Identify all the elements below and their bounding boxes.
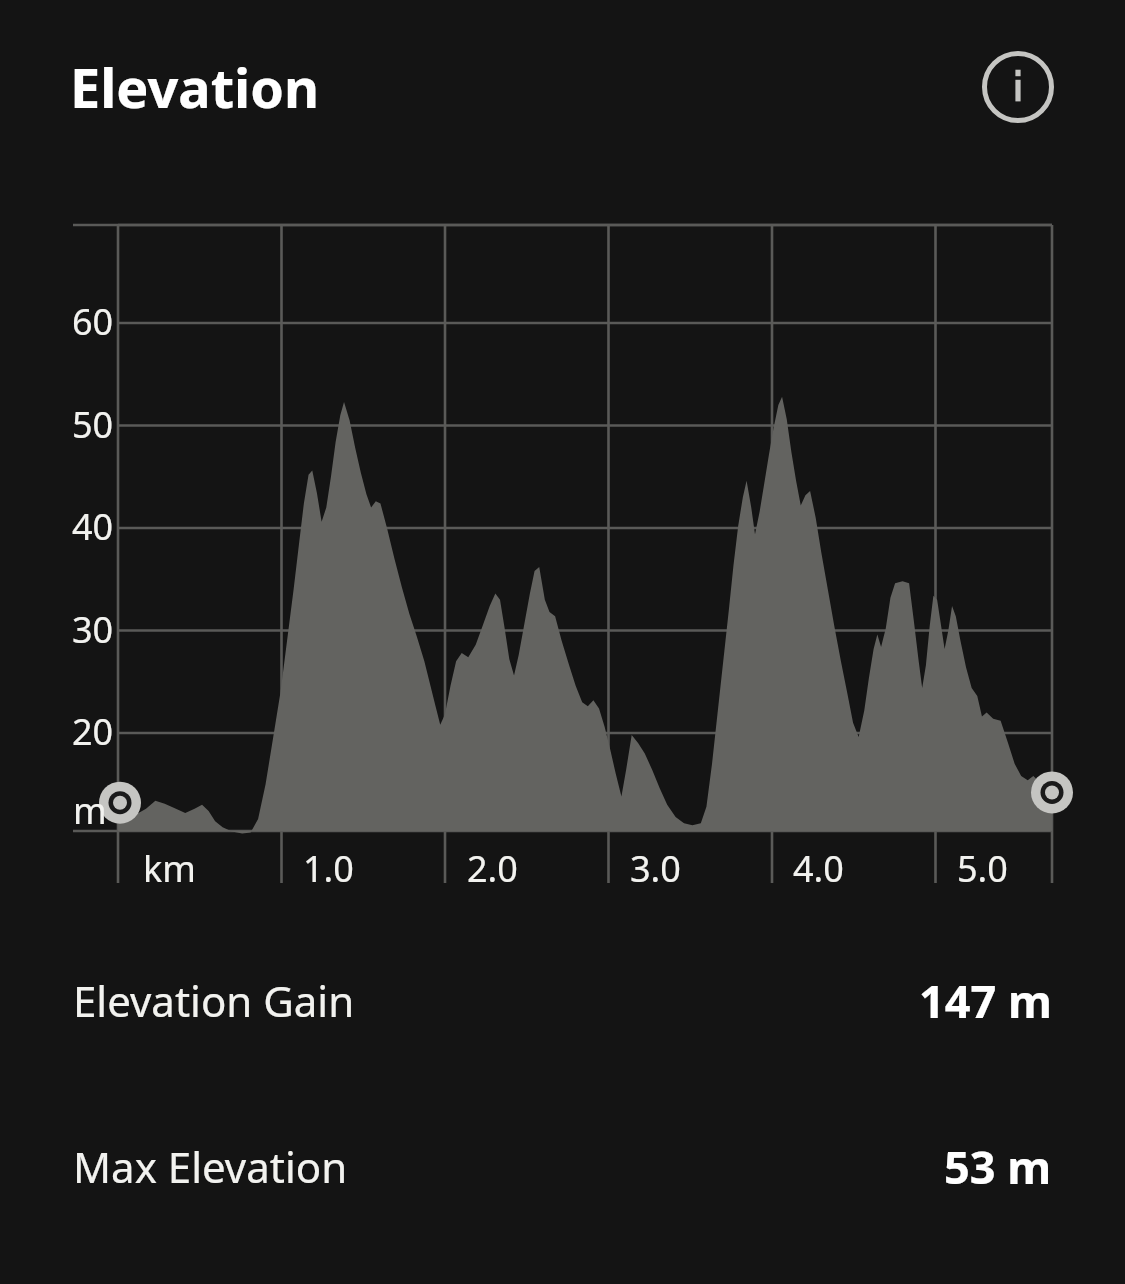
staticText: Elevation Gain — [73, 972, 355, 1029]
staticText: 30 — [72, 605, 114, 654]
staticText: 5.0 — [957, 844, 1008, 893]
staticText: Max Elevation — [73, 1138, 348, 1195]
staticText: 60 — [72, 297, 114, 346]
staticText: 40 — [72, 502, 114, 551]
button[interactable]: Max Elevation — [0, 1134, 1125, 1198]
staticText: Elevation — [70, 50, 320, 124]
staticText: km — [143, 844, 196, 893]
staticText: 2.0 — [467, 844, 518, 893]
staticText: 4.0 — [793, 844, 844, 893]
staticText: 50 — [72, 400, 114, 449]
staticText: m — [73, 786, 107, 835]
staticText: 53 m — [944, 1136, 1052, 1197]
staticText: 20 — [72, 707, 114, 756]
button[interactable]: Info about elevation — [975, 44, 1061, 130]
staticText: 3.0 — [630, 844, 681, 893]
button[interactable]: Elevation Gain — [0, 968, 1125, 1032]
staticText: 147 m — [919, 970, 1052, 1031]
staticText: 1.0 — [303, 844, 354, 893]
